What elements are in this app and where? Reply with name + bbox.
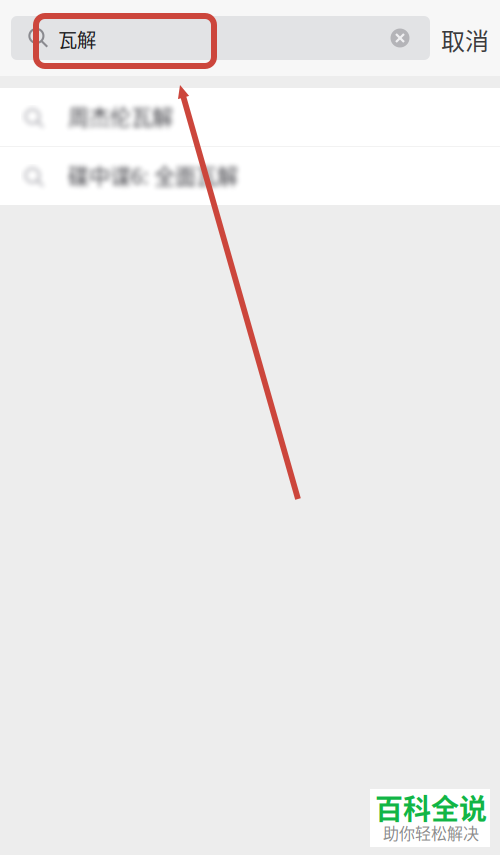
button[interactable]: 取消 bbox=[430, 15, 500, 60]
button[interactable]: 周杰伦瓦解 bbox=[0, 88, 500, 146]
button[interactable]: 碟中谍6: 全面瓦解 bbox=[0, 147, 500, 205]
staticText: 助你轻松解决 bbox=[383, 821, 479, 844]
staticText: 瓦解 bbox=[58, 25, 96, 53]
staticText: 百科全说 bbox=[375, 787, 487, 827]
staticText: 取消 bbox=[441, 22, 489, 57]
button[interactable]: Clear text bbox=[380, 16, 430, 60]
